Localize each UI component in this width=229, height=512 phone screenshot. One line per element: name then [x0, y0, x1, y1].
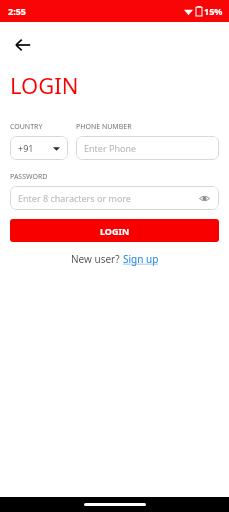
staticText: COUNTRY	[10, 122, 43, 132]
staticText: 15%	[204, 5, 223, 17]
button[interactable]: +91	[10, 136, 68, 160]
button[interactable]: Show password	[197, 191, 211, 205]
staticText: +91	[18, 142, 34, 154]
staticText: 2:55	[8, 5, 26, 17]
button[interactable]: Enter Phone	[76, 136, 219, 160]
button[interactable]: Enter 8 characters or more	[10, 186, 219, 210]
staticText: PASSWORD	[10, 172, 48, 182]
button[interactable]: LOGIN	[10, 219, 219, 242]
staticText: Sign up	[123, 252, 159, 266]
staticText: LOGIN	[100, 225, 130, 237]
staticText: New user?	[71, 252, 123, 266]
button[interactable]: Sign up	[123, 252, 159, 266]
staticText: Enter Phone	[84, 142, 137, 154]
staticText: Enter 8 characters or more	[18, 192, 131, 204]
staticText: PHONE NUMBER	[76, 122, 132, 132]
button[interactable]: Back	[6, 28, 40, 62]
staticText: LOGIN	[10, 70, 79, 100]
